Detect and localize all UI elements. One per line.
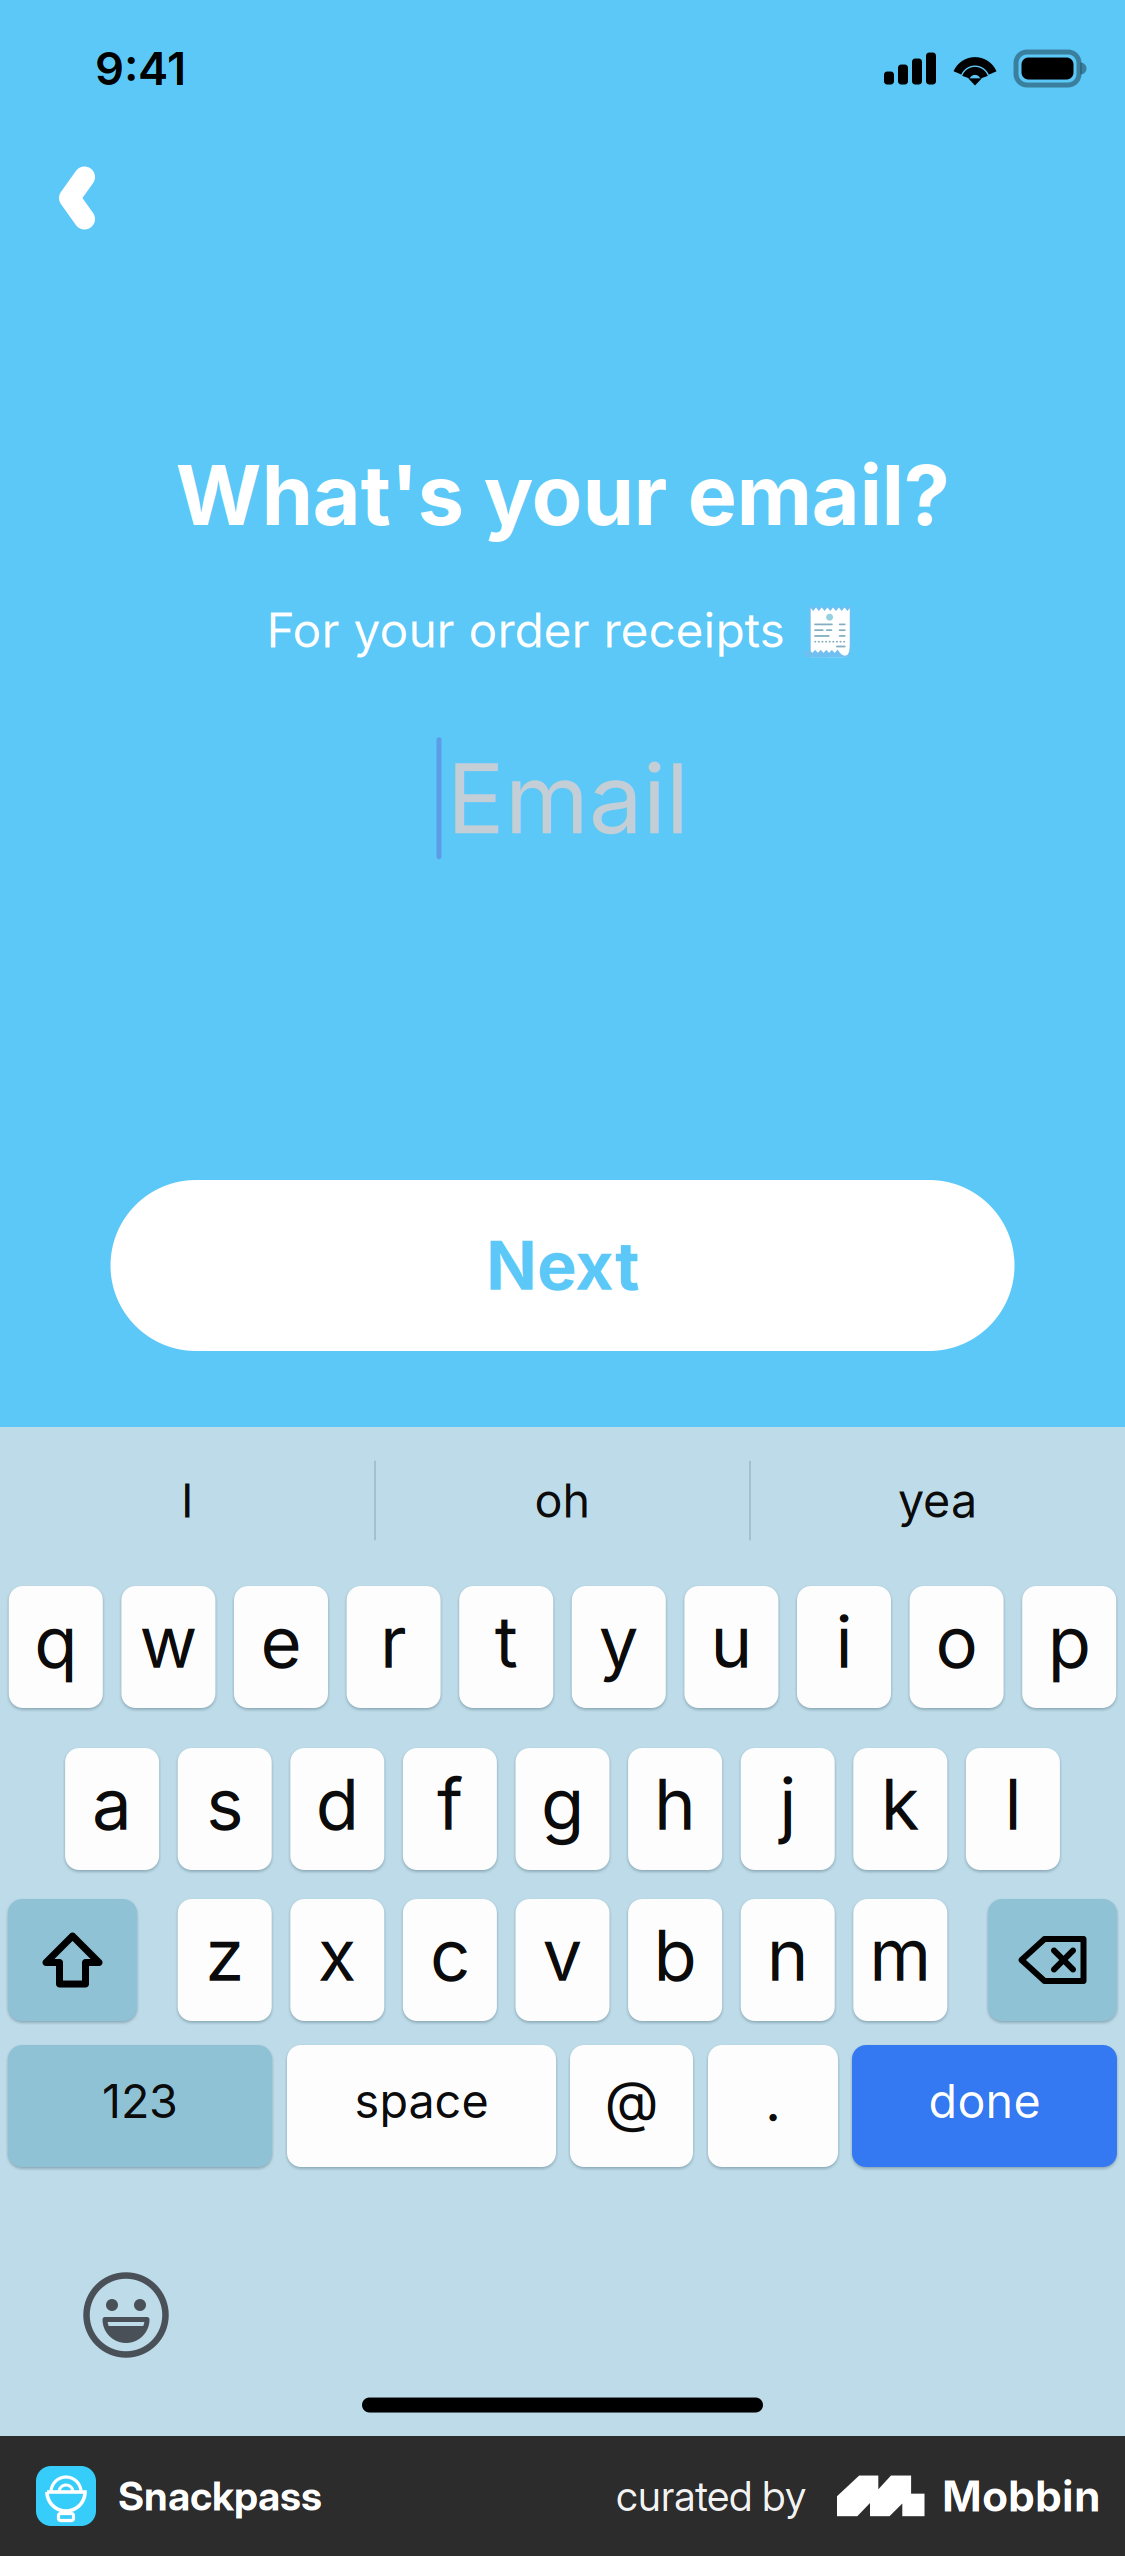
button[interactable]: y	[572, 1586, 666, 1708]
staticText: y	[599, 1599, 639, 1685]
staticText: l	[1004, 1761, 1021, 1847]
staticText: Snackpass	[118, 2472, 322, 2520]
staticText: r	[380, 1599, 407, 1685]
button[interactable]: i	[797, 1586, 891, 1708]
staticText: i	[835, 1599, 852, 1685]
button[interactable]: n	[741, 1899, 835, 2021]
staticText: curated by	[616, 2471, 806, 2521]
button[interactable]: j	[741, 1748, 835, 1870]
staticText: z	[205, 1912, 244, 1998]
button[interactable]: 123	[8, 2045, 272, 2167]
staticText: s	[206, 1761, 243, 1847]
button[interactable]: x	[290, 1899, 384, 2021]
button[interactable]: z	[178, 1899, 272, 2021]
staticText: Next	[486, 1225, 639, 1306]
button[interactable]: Delete	[988, 1899, 1117, 2021]
button[interactable]: g	[515, 1748, 609, 1870]
button[interactable]: b	[628, 1899, 722, 2021]
staticText: h	[654, 1761, 696, 1847]
button[interactable]: a	[65, 1748, 159, 1870]
button[interactable]: e	[234, 1586, 328, 1708]
button[interactable]: Shift	[8, 1899, 137, 2021]
button[interactable]: u	[684, 1586, 778, 1708]
staticText: w	[139, 1599, 197, 1685]
button[interactable]: space	[287, 2045, 556, 2167]
staticText: space	[354, 2073, 488, 2129]
button[interactable]: k	[853, 1748, 947, 1870]
staticText: I	[181, 1472, 194, 1529]
button[interactable]: o	[910, 1586, 1004, 1708]
staticText: x	[318, 1912, 357, 1998]
button[interactable]: Next	[110, 1180, 1014, 1351]
button[interactable]: oh	[375, 1444, 750, 1557]
button[interactable]: w	[121, 1586, 215, 1708]
staticText: k	[881, 1761, 920, 1847]
staticText: oh	[534, 1472, 590, 1529]
staticText: yea	[898, 1472, 977, 1529]
button[interactable]: Emoji keyboard	[71, 2260, 181, 2370]
button[interactable]: s	[178, 1748, 272, 1870]
staticText: m	[869, 1912, 931, 1998]
button[interactable]: .	[708, 2045, 838, 2167]
staticText: n	[767, 1912, 809, 1998]
button[interactable]: m	[853, 1899, 947, 2021]
button[interactable]: q	[9, 1586, 103, 1708]
staticText: done	[928, 2073, 1040, 2129]
button[interactable]: l	[966, 1748, 1060, 1870]
button[interactable]: r	[347, 1586, 441, 1708]
button[interactable]: d	[290, 1748, 384, 1870]
staticText: u	[710, 1599, 752, 1685]
staticText: e	[260, 1599, 301, 1685]
button[interactable]: f	[403, 1748, 497, 1870]
staticText: What's your email?	[175, 445, 949, 545]
staticText: a	[92, 1761, 132, 1847]
staticText: Mobbin	[942, 2470, 1101, 2522]
staticText: 9:41	[95, 41, 186, 96]
staticText: t	[495, 1599, 518, 1685]
staticText: q	[34, 1599, 77, 1685]
button[interactable]: t	[459, 1586, 553, 1708]
button[interactable]: yea	[750, 1444, 1125, 1557]
staticText: j	[779, 1761, 796, 1847]
staticText: .	[765, 2067, 781, 2135]
staticText: v	[542, 1912, 582, 1998]
staticText: c	[430, 1912, 470, 1998]
staticText: For your order receipts 🧾	[266, 601, 858, 659]
staticText: Email	[446, 740, 688, 856]
button[interactable]: h	[628, 1748, 722, 1870]
staticText: p	[1048, 1599, 1091, 1685]
staticText: d	[316, 1761, 359, 1847]
staticText: g	[541, 1761, 584, 1847]
staticText: @	[604, 2067, 658, 2135]
button[interactable]: c	[403, 1899, 497, 2021]
button[interactable]: Back	[25, 146, 129, 250]
button[interactable]: I	[0, 1444, 375, 1557]
staticText: o	[936, 1599, 978, 1685]
button[interactable]: @	[570, 2045, 693, 2167]
staticText: b	[654, 1912, 697, 1998]
staticText: f	[437, 1761, 463, 1847]
staticText: 123	[102, 2073, 178, 2129]
button[interactable]: v	[515, 1899, 609, 2021]
button[interactable]: done	[852, 2045, 1117, 2167]
button[interactable]: p	[1022, 1586, 1116, 1708]
